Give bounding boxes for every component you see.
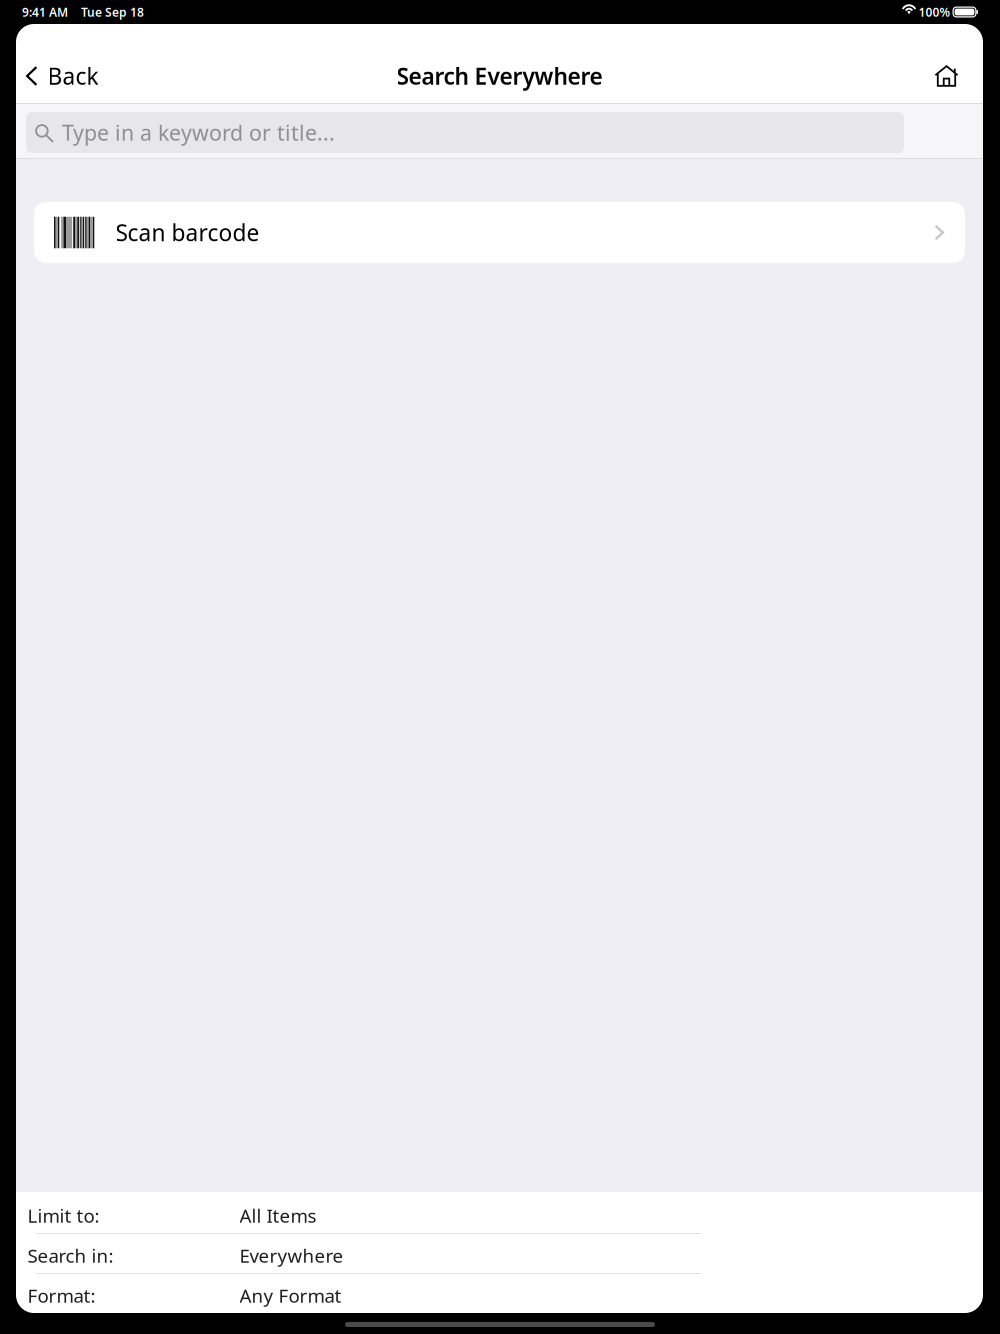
staticText: Any Format [239, 1283, 341, 1308]
staticText: Scan barcode [115, 217, 259, 247]
button[interactable]: Format: [16, 1274, 983, 1313]
staticText: Search Everywhere [396, 61, 602, 91]
staticText: Type in a keyword or title... [62, 118, 335, 147]
button[interactable]: Home [916, 49, 967, 103]
staticText: Everywhere [239, 1243, 343, 1268]
button[interactable]: Limit to: [16, 1192, 983, 1233]
staticText: 9:41 AM [22, 4, 68, 20]
staticText: Back [47, 61, 98, 91]
staticText: Search in: [27, 1243, 113, 1268]
button[interactable]: Back [26, 49, 112, 103]
button[interactable]: Type in a keyword or title... [26, 112, 904, 153]
staticText: Tue Sep 18 [81, 4, 144, 20]
staticText: Format: [27, 1283, 95, 1308]
button[interactable]: Scan barcode [34, 202, 965, 263]
staticText: 100% [918, 4, 950, 20]
staticText: All Items [239, 1203, 316, 1228]
button[interactable]: Search in: [16, 1234, 983, 1273]
staticText: Limit to: [27, 1203, 99, 1228]
